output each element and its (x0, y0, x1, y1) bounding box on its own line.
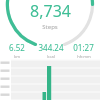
button[interactable]: 6.52 (0, 42, 34, 58)
staticText: kcal (47, 54, 55, 58)
staticText: 6.52 (9, 42, 25, 53)
button[interactable]: 8,734 (0, 0, 100, 60)
staticText: 344.24 (38, 42, 64, 53)
button[interactable]: 01:27 (67, 42, 100, 58)
staticText: 8,734 (30, 0, 71, 22)
button[interactable]: Activity chart (0, 60, 100, 100)
staticText: 01:27 (73, 42, 94, 53)
staticText: km (14, 54, 20, 58)
button[interactable]: 344.24 (34, 42, 67, 58)
staticText: Steps (42, 23, 58, 31)
staticText: hh:mm (77, 54, 91, 58)
